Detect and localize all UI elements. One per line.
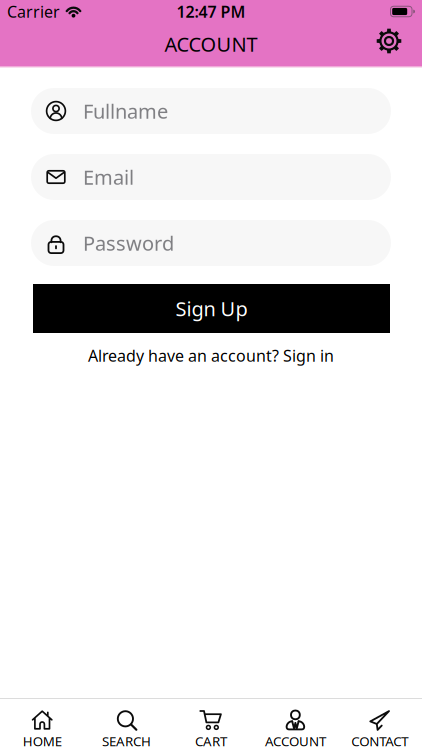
staticText: CART: [195, 732, 227, 750]
staticText: HOME: [23, 732, 62, 750]
staticText: ACCOUNT: [265, 732, 326, 750]
button[interactable]: Already have an account? Sign in: [88, 345, 334, 366]
staticText: Password: [83, 230, 174, 256]
button[interactable]: HOME: [0, 710, 84, 747]
staticText: ACCOUNT: [164, 31, 257, 57]
button[interactable]: CONTACT: [338, 710, 422, 747]
button[interactable]: CART: [169, 710, 253, 747]
button[interactable]: ACCOUNT: [253, 710, 338, 747]
staticText: Email: [83, 164, 134, 190]
button[interactable]: Email: [31, 154, 391, 200]
staticText: SEARCH: [102, 732, 151, 750]
button[interactable]: Fullname: [31, 88, 391, 134]
staticText: 12:47 PM: [176, 1, 245, 22]
staticText: Already have an account? Sign in: [88, 345, 334, 366]
button[interactable]: Password: [31, 220, 391, 266]
staticText: Carrier: [7, 1, 60, 22]
button[interactable]: SEARCH: [84, 710, 169, 747]
staticText: CONTACT: [351, 732, 408, 750]
button[interactable]: Settings: [376, 28, 422, 60]
button[interactable]: Sign Up: [33, 284, 390, 333]
staticText: Sign Up: [175, 295, 247, 322]
staticText: Fullname: [83, 98, 168, 124]
